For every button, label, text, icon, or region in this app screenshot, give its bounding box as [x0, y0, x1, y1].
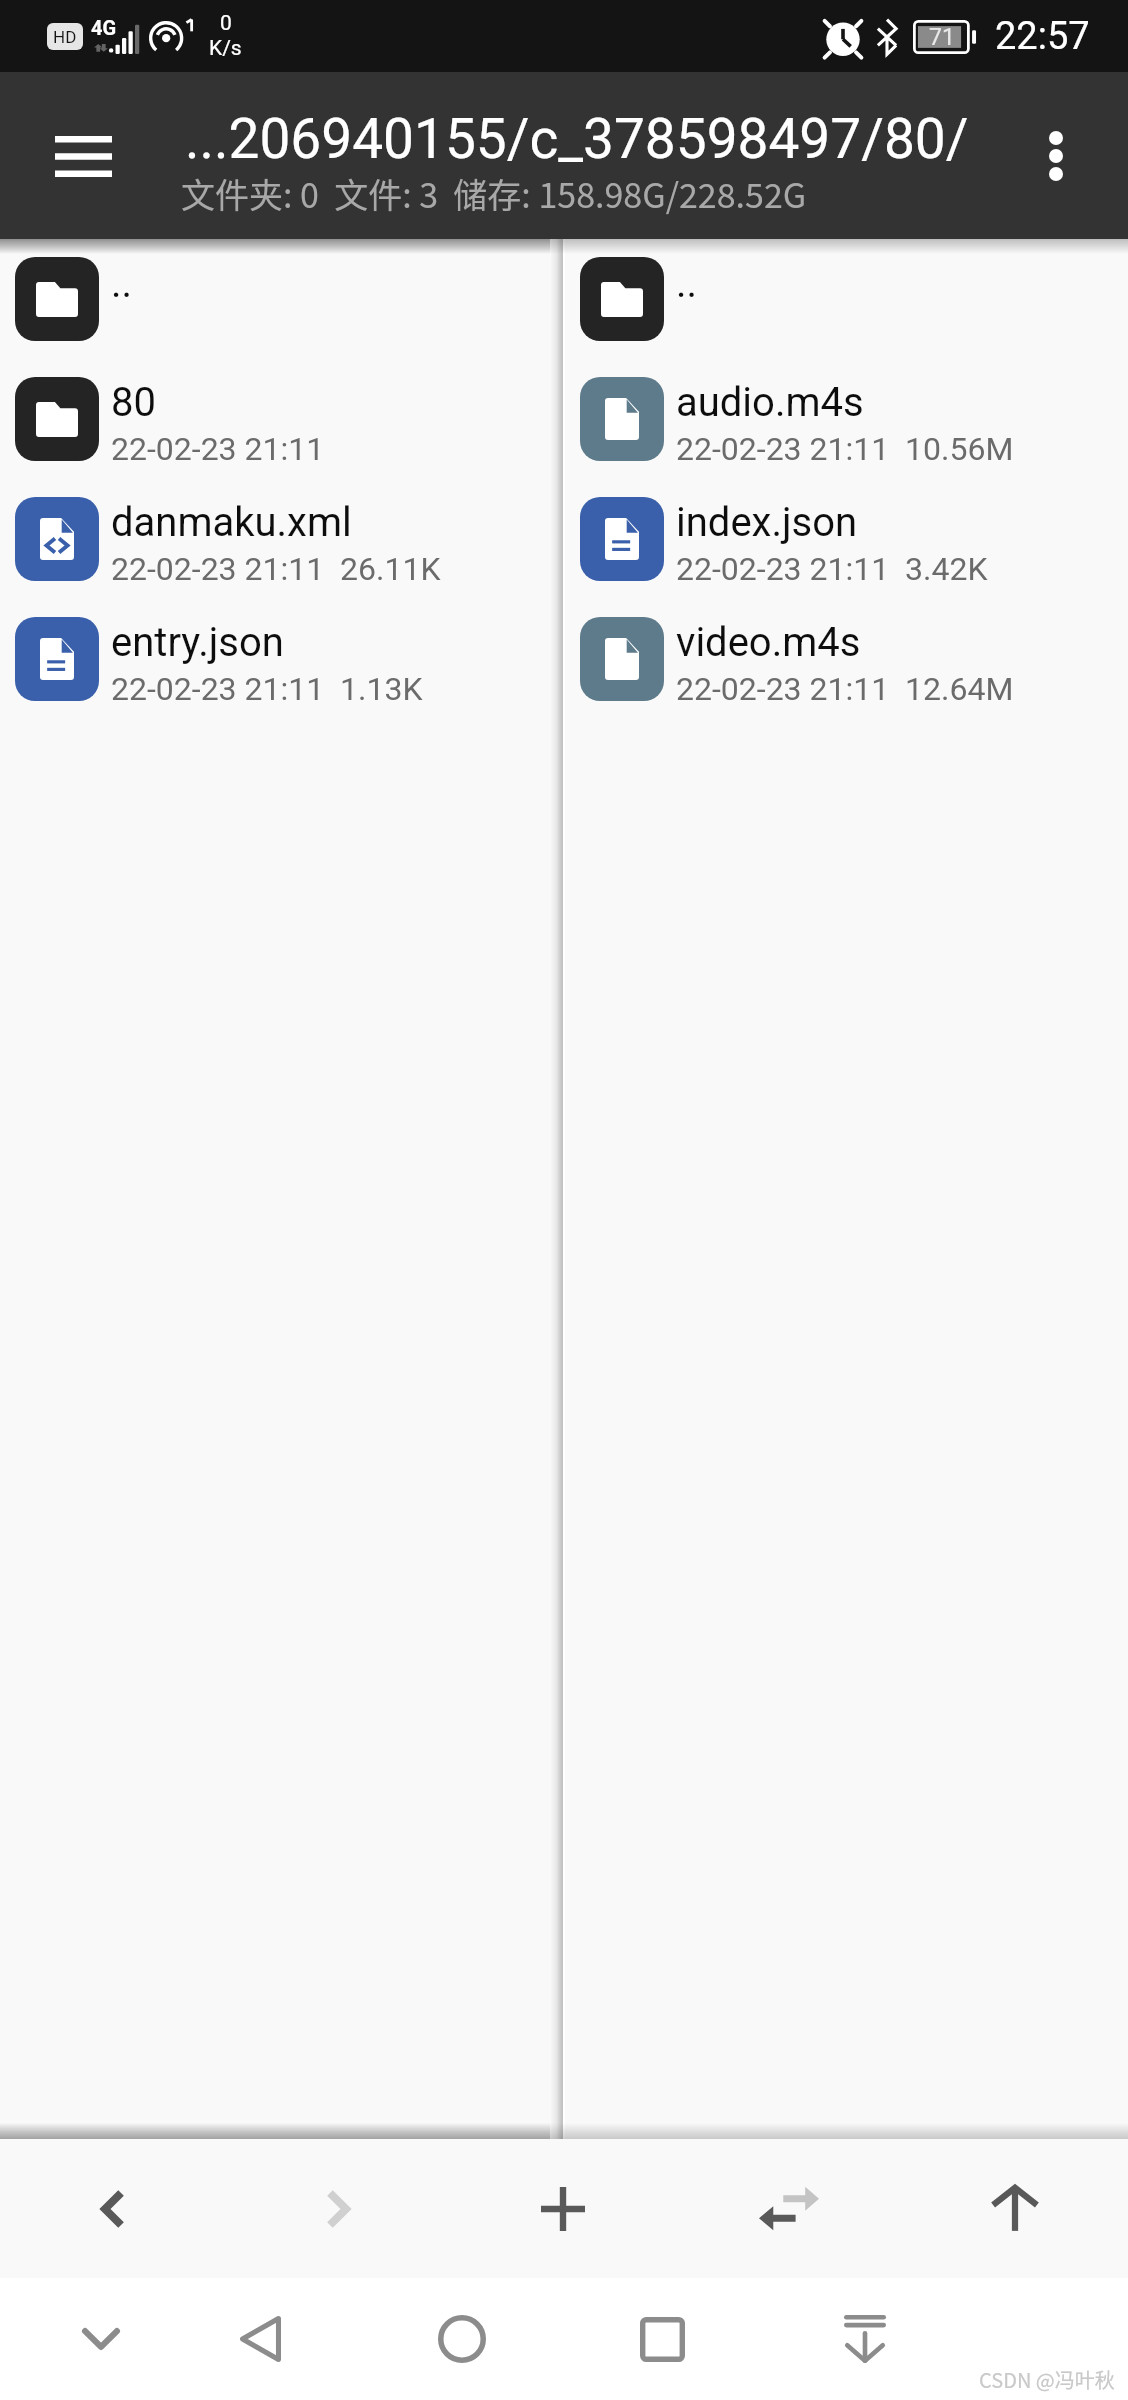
staticText: 4G	[91, 16, 117, 39]
button[interactable]: 80	[0, 359, 550, 479]
staticText: HD	[53, 27, 77, 47]
staticText: ..	[111, 260, 133, 307]
button[interactable]: Back	[205, 2278, 315, 2400]
button[interactable]: ..	[565, 239, 1128, 359]
button[interactable]: Back	[0, 2139, 225, 2278]
button[interactable]: Scroll to bottom	[810, 2278, 920, 2400]
button[interactable]: Hide keyboard	[46, 2278, 156, 2400]
button[interactable]: index.json	[565, 479, 1128, 599]
staticText: 80	[111, 379, 156, 426]
staticText: CSDN @冯叶秋	[979, 2365, 1115, 2394]
staticText: ..	[676, 260, 698, 307]
staticText: 22-02-23 21:11	[111, 430, 325, 468]
staticText: danmaku.xml	[111, 499, 352, 546]
staticText: ...206940155/c_378598497/80/	[185, 107, 969, 171]
staticText: 22:57	[995, 14, 1090, 59]
staticText: 71	[929, 24, 955, 51]
button[interactable]: ..	[0, 239, 550, 359]
button[interactable]: audio.m4s	[565, 359, 1128, 479]
staticText: 22-02-23 21:11 10.56M	[676, 430, 1014, 468]
button[interactable]: Up	[902, 2139, 1128, 2278]
staticText: K/s	[209, 36, 242, 61]
staticText: 22-02-23 21:11 3.42K	[676, 550, 988, 588]
button[interactable]: Recents	[607, 2278, 717, 2400]
button[interactable]: danmaku.xml	[0, 479, 550, 599]
button[interactable]: Forward	[225, 2139, 450, 2278]
button[interactable]: Home	[407, 2278, 517, 2400]
staticText: audio.m4s	[676, 379, 864, 426]
staticText: 22-02-23 21:11 26.11K	[111, 550, 441, 588]
button[interactable]: New	[450, 2139, 676, 2278]
staticText: video.m4s	[676, 619, 861, 666]
button[interactable]: entry.json	[0, 599, 550, 719]
button[interactable]: More options	[1008, 108, 1104, 204]
button[interactable]: Menu	[34, 107, 132, 205]
staticText: 文件夹: 0 文件: 3 储存: 158.98G/228.52G	[181, 169, 807, 218]
staticText: entry.json	[111, 619, 284, 666]
staticText: 0	[220, 11, 232, 36]
staticText: index.json	[676, 499, 858, 546]
staticText: 22-02-23 21:11 12.64M	[676, 670, 1014, 708]
button[interactable]: video.m4s	[565, 599, 1128, 719]
staticText: 22-02-23 21:11 1.13K	[111, 670, 423, 708]
button[interactable]: Swap panes	[676, 2139, 902, 2278]
